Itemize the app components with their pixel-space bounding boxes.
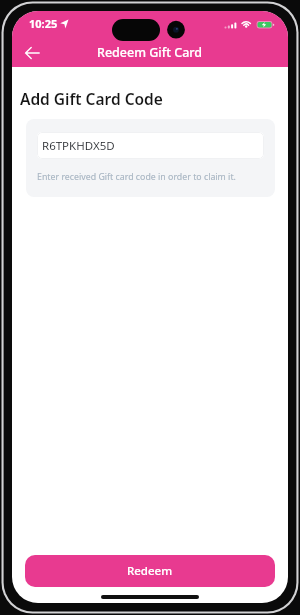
button[interactable]: R6TPKHDX5D xyxy=(37,132,264,159)
staticText: Add Gift Card Code xyxy=(20,88,163,109)
staticText: Enter received Gift card code in order t… xyxy=(37,171,236,183)
staticText: Redeem Gift Card xyxy=(97,44,203,61)
button[interactable]: Redeem xyxy=(25,555,275,587)
button[interactable] xyxy=(17,41,49,65)
staticText: R6TPKHDX5D xyxy=(42,138,115,154)
staticText: Redeem xyxy=(127,563,173,579)
staticText: 10:25 xyxy=(29,16,58,31)
